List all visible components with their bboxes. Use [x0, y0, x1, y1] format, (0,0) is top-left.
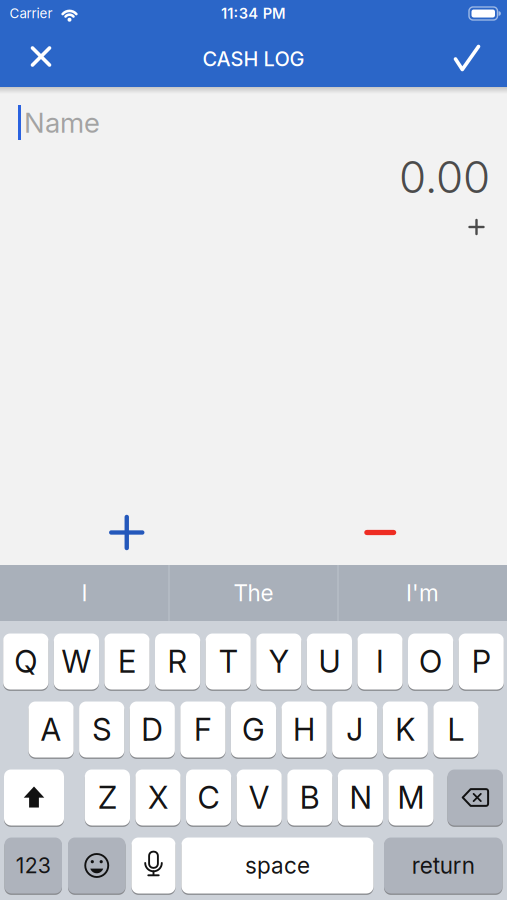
staticText: R [168, 643, 188, 680]
button[interactable] [468, 219, 484, 235]
staticText: H [293, 711, 315, 748]
staticText: W [61, 643, 91, 680]
staticText: P [472, 643, 491, 680]
staticText: B [300, 779, 320, 816]
button[interactable]: O [408, 632, 453, 690]
button[interactable]: space [181, 836, 373, 894]
button[interactable]: T [206, 632, 251, 690]
button[interactable]: D [130, 700, 175, 758]
staticText: Y [269, 643, 289, 680]
staticText: L [447, 711, 464, 748]
button[interactable] [131, 836, 175, 894]
button[interactable]: Z [85, 768, 130, 826]
button[interactable]: I [357, 632, 403, 690]
staticText: N [349, 779, 371, 816]
button[interactable]: K [383, 700, 428, 758]
button[interactable]: 123 [4, 836, 62, 894]
staticText: A [41, 711, 62, 748]
button[interactable]: A [28, 700, 74, 758]
staticText: S [92, 711, 111, 748]
staticText: Z [98, 779, 117, 816]
staticText: I'm [406, 580, 439, 606]
button[interactable] [19, 34, 63, 78]
staticText: space [245, 852, 310, 879]
button[interactable] [445, 35, 489, 79]
staticText: I [376, 643, 384, 680]
button[interactable]: F [180, 700, 225, 758]
button[interactable]: Y [256, 632, 301, 690]
button[interactable]: P [459, 632, 504, 690]
button[interactable]: I [0, 565, 169, 621]
button[interactable]: R [155, 632, 200, 690]
button[interactable]: Q [3, 632, 48, 690]
staticText: X [148, 779, 168, 816]
button[interactable]: S [79, 700, 124, 758]
button[interactable]: return [384, 836, 502, 894]
button[interactable]: C [186, 768, 231, 826]
staticText: CASH LOG [202, 47, 304, 71]
staticText: 123 [16, 853, 51, 878]
button[interactable]: W [54, 632, 99, 690]
staticText: G [242, 711, 265, 748]
staticText: return [412, 852, 475, 879]
button[interactable]: J [332, 700, 377, 758]
button[interactable]: X [135, 768, 181, 826]
button[interactable]: M [388, 768, 434, 826]
button[interactable] [447, 768, 503, 826]
staticText: Q [14, 643, 37, 680]
staticText: K [395, 711, 415, 748]
button[interactable]: G [231, 700, 276, 758]
staticText: O [419, 643, 442, 680]
staticText: E [118, 643, 136, 680]
staticText: C [198, 779, 220, 816]
button[interactable]: E [104, 632, 150, 690]
staticText: Name [24, 106, 100, 139]
button[interactable] [4, 768, 64, 826]
button[interactable]: I'm [338, 565, 507, 621]
staticText: M [397, 779, 424, 816]
button[interactable]: L [433, 700, 478, 758]
staticText: 11:34 PM [221, 5, 286, 22]
button[interactable]: Name [0, 105, 507, 140]
button[interactable] [340, 492, 420, 572]
button[interactable] [87, 492, 167, 572]
staticText: 0.00 [399, 151, 490, 203]
button[interactable]: B [287, 768, 332, 826]
button[interactable]: N [338, 768, 383, 826]
button[interactable] [68, 836, 125, 894]
button[interactable]: V [237, 768, 282, 826]
staticText: D [141, 711, 163, 748]
staticText: T [219, 643, 238, 680]
staticText: F [194, 711, 212, 748]
button[interactable]: The [169, 565, 338, 621]
staticText: Carrier [9, 6, 52, 21]
staticText: J [346, 711, 363, 748]
staticText: U [318, 643, 340, 680]
staticText: V [249, 779, 270, 816]
staticText: I [81, 580, 87, 606]
button[interactable]: H [281, 700, 327, 758]
button[interactable]: U [307, 632, 352, 690]
staticText: The [233, 580, 273, 606]
